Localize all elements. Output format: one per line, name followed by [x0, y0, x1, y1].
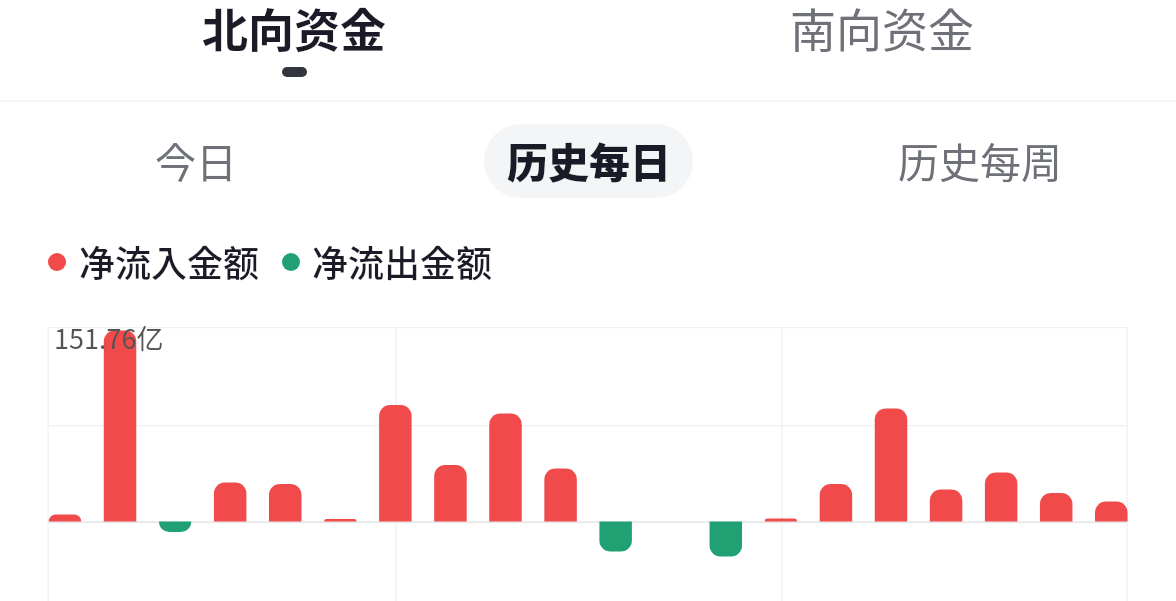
staticText: 净流入金额 — [79, 235, 260, 287]
button[interactable]: 北向资金 — [0, 0, 588, 102]
staticText: 今日 — [155, 130, 237, 189]
staticText: 北向资金 — [202, 0, 386, 61]
staticText: 历史每周 — [898, 130, 1062, 189]
button[interactable]: 南向资金 — [588, 0, 1176, 102]
staticText: 净流出金额 — [312, 235, 493, 287]
staticText: 南向资金 — [790, 0, 974, 61]
staticText: 历史每日 — [507, 130, 671, 189]
other: Selected tab indicator — [282, 67, 307, 77]
button[interactable]: 历史每日 — [484, 122, 693, 196]
button[interactable]: 今日 — [135, 118, 257, 201]
staticText: 151.76亿 — [54, 318, 164, 357]
button[interactable]: 历史每周 — [878, 118, 1082, 201]
